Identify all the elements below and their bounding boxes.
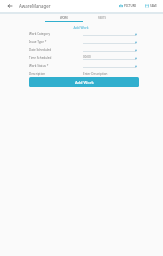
staticText: Enter Description — [83, 72, 108, 76]
staticText: WORK — [60, 16, 69, 20]
staticText: PICTURE — [124, 4, 137, 8]
staticText: PARTS — [98, 16, 106, 20]
staticText: 00:00 — [83, 55, 91, 59]
staticText: Work Status * — [29, 64, 83, 68]
button[interactable]: Add Work — [29, 77, 139, 87]
button[interactable]: WORK — [45, 14, 83, 22]
staticText: Date Scheduled — [29, 48, 83, 52]
button[interactable] — [83, 38, 139, 46]
button[interactable] — [83, 62, 139, 70]
button[interactable] — [83, 46, 139, 54]
button[interactable]: Back — [0, 0, 19, 12]
button[interactable]: PARTS — [83, 14, 121, 22]
staticText: Time Scheduled — [29, 56, 83, 60]
staticText: Add Work — [24, 25, 138, 29]
staticText: AwareManager — [19, 3, 51, 9]
button[interactable]: 00:00 — [83, 54, 139, 62]
staticText: Work Category — [29, 32, 83, 36]
staticText: Issue Type * — [29, 40, 83, 44]
button[interactable] — [83, 30, 139, 38]
staticText: Description — [29, 72, 83, 76]
button[interactable]: SAVE — [145, 4, 158, 8]
staticText: SAVE — [150, 4, 158, 8]
staticText: Add Work — [75, 80, 94, 85]
button[interactable]: PICTURE — [119, 4, 137, 8]
